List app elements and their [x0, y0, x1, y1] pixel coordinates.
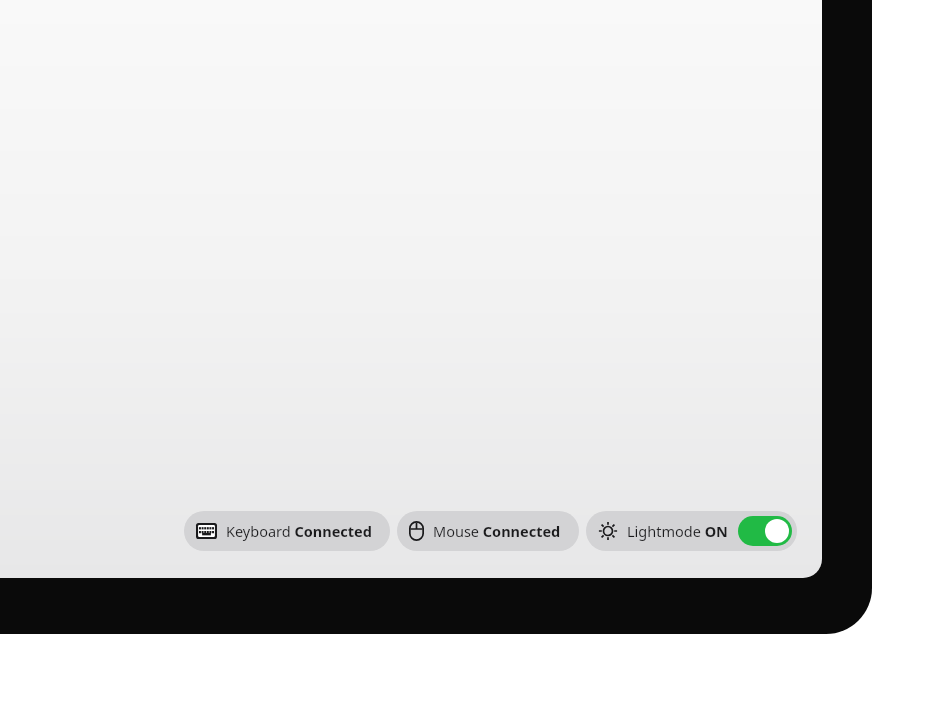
button[interactable]: Lightmode [586, 511, 797, 551]
staticText: Mouse Connected [433, 521, 561, 541]
other: Mouse [409, 521, 424, 541]
other: Keyboard [196, 523, 217, 539]
staticText: Keyboard Connected [226, 521, 372, 541]
button[interactable]: Mouse [397, 511, 579, 551]
button[interactable]: Lightmode toggle, on [738, 516, 792, 546]
staticText: Lightmode ON [627, 521, 728, 541]
other: Lightmode [598, 521, 618, 541]
button[interactable]: Keyboard [184, 511, 390, 551]
